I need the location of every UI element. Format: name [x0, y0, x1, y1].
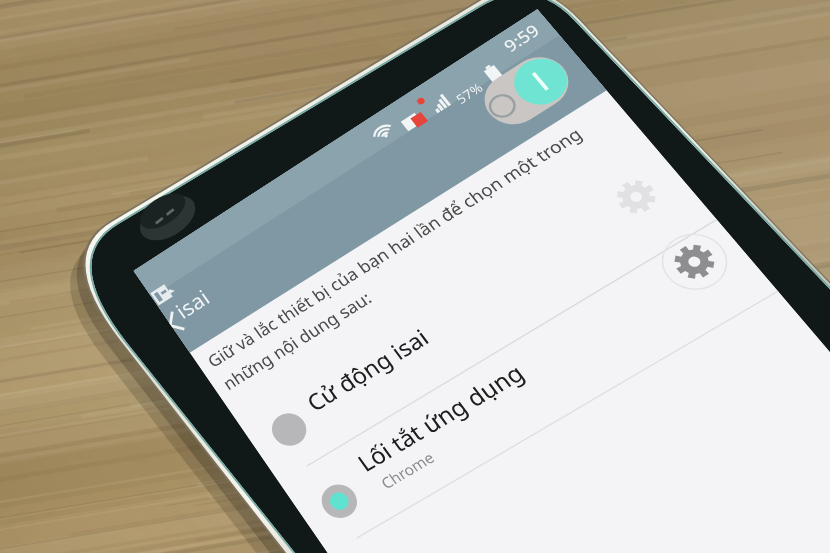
button[interactable]: Phone on a wooden table showing the isai… — [0, 0, 830, 553]
